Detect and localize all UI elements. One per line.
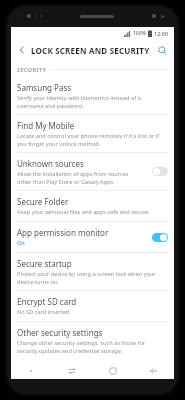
- staticText: Change other security settings, such as …: [17, 339, 146, 354]
- staticText: Secure Folder: [17, 196, 69, 207]
- staticText: No SD card inserted: [17, 308, 70, 316]
- button[interactable]: Samsung Pass: [11, 77, 174, 114]
- staticText: App permission monitor: [17, 227, 109, 238]
- button[interactable]: Menu indicator: [11, 362, 51, 379]
- button[interactable]: Secure Folder: [11, 191, 174, 221]
- button[interactable]: Recents: [51, 362, 92, 379]
- staticText: Find My Mobile: [17, 120, 75, 131]
- staticText: LOCK SCREEN AND SECURITY: [31, 45, 150, 56]
- button[interactable]: Search: [154, 42, 170, 58]
- button[interactable]: Find My Mobile: [11, 115, 174, 152]
- button[interactable]: App permission monitor: [11, 222, 174, 252]
- button[interactable]: Unknown sources: [11, 153, 174, 190]
- staticText: Protect your device by using a screen lo…: [17, 270, 156, 285]
- staticText: SECURITY: [17, 66, 47, 73]
- button[interactable]: Toggle on: [152, 233, 168, 242]
- button[interactable]: Other security settings: [11, 322, 174, 359]
- staticText: Encrypt SD card: [17, 296, 77, 307]
- staticText: Locate and control your phone remotely i…: [17, 132, 160, 147]
- staticText: Allow the installation of apps from sour…: [17, 170, 129, 185]
- staticText: Other security settings: [17, 327, 103, 338]
- button[interactable]: Toggle off: [152, 167, 168, 176]
- button[interactable]: Secure startup: [11, 253, 174, 290]
- button[interactable]: Encrypt SD card: [11, 291, 174, 321]
- staticText: On: [17, 239, 25, 247]
- staticText: 100%: [133, 30, 146, 37]
- button[interactable]: Back: [133, 362, 174, 379]
- button[interactable]: Home: [92, 362, 133, 379]
- button[interactable]: Back: [15, 43, 29, 57]
- staticText: Verify your identity with biometrics ins…: [17, 94, 141, 109]
- staticText: 12:00: [154, 30, 169, 37]
- staticText: Samsung Pass: [17, 82, 72, 93]
- staticText: Unknown sources: [17, 158, 84, 169]
- staticText: Keep your personal files and apps safe a…: [17, 208, 150, 216]
- staticText: Secure startup: [17, 258, 72, 269]
